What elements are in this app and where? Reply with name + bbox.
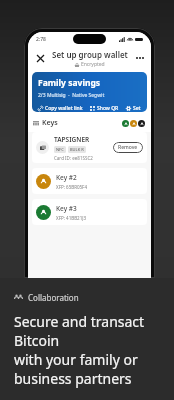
staticText: XFP: 41BB21J3 xyxy=(56,215,87,221)
button[interactable]: Key #2 xyxy=(32,168,147,194)
staticText: 2/3 Multisig · Native Segwit xyxy=(38,92,105,99)
staticText: BULK R xyxy=(70,147,84,152)
button[interactable]: Close xyxy=(32,50,48,66)
staticText: Copy wallet link xyxy=(45,105,83,111)
button[interactable]: Remove xyxy=(113,142,143,153)
button[interactable]: Family savings xyxy=(32,72,147,112)
staticText: Settings xyxy=(133,105,142,111)
button[interactable]: Copy wallet link xyxy=(38,104,83,112)
staticText: TAPSIGNER xyxy=(54,135,90,144)
staticText: Family savings xyxy=(38,77,101,89)
staticText: Collaboration xyxy=(28,292,79,303)
staticText: Remove xyxy=(118,144,138,151)
staticText: 2:78 xyxy=(36,36,46,43)
staticText: NFC xyxy=(56,147,64,152)
button[interactable]: Settings xyxy=(126,104,142,112)
button[interactable]: Show QR xyxy=(90,104,119,112)
staticText: Key #2 xyxy=(56,173,77,182)
staticText: Secure and transact Bitcoin with your fa… xyxy=(14,312,164,388)
staticText: XFP: 65BR05F4 xyxy=(56,184,87,190)
button[interactable]: More options xyxy=(132,50,148,66)
staticText: Card ID: ee81SSC2 xyxy=(54,155,93,161)
button[interactable]: Key #3 xyxy=(32,199,147,225)
staticText: Keys xyxy=(42,118,58,128)
button[interactable]: TAPSIGNER xyxy=(32,132,147,163)
staticText: Key #3 xyxy=(56,204,77,213)
staticText: Show QR xyxy=(97,105,119,111)
staticText: Set up group wallet xyxy=(52,49,128,60)
staticText: Encrypted xyxy=(81,61,105,68)
